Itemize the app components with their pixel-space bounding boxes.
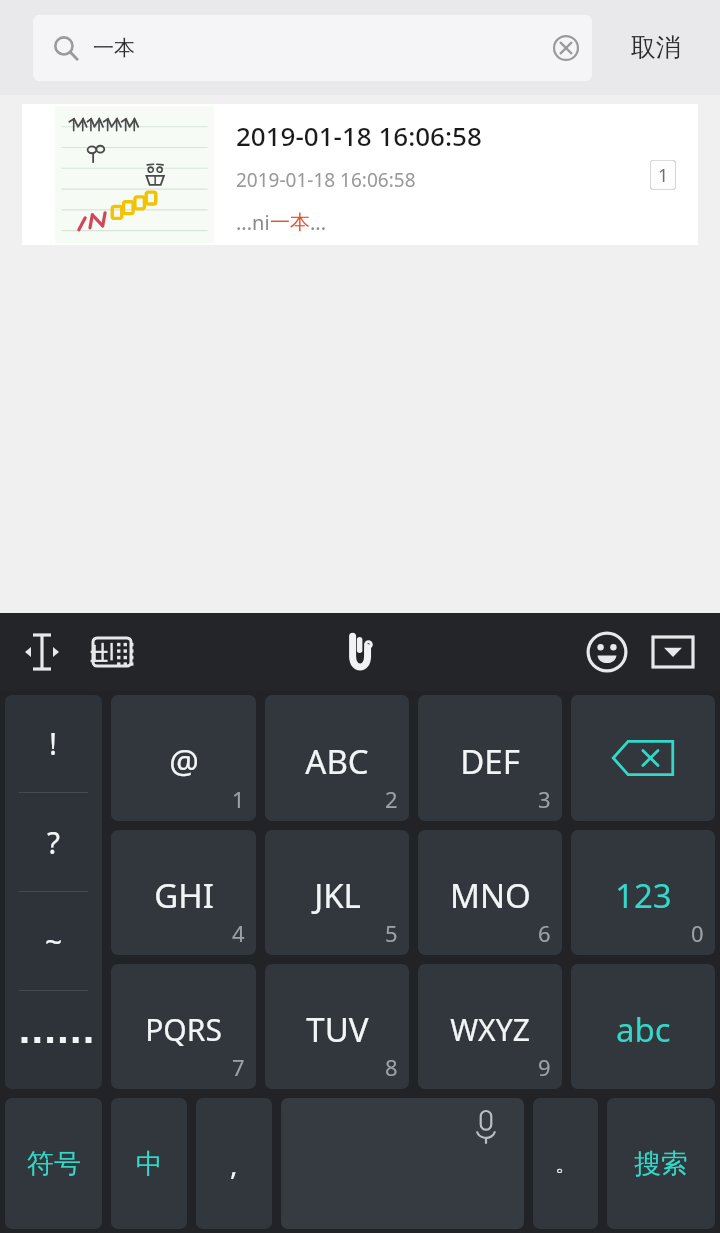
staticText: GHI — [154, 873, 214, 918]
staticText: 2019-01-18 16:06:58 — [236, 167, 416, 193]
button[interactable]: 中 — [111, 1098, 187, 1229]
staticText: @ — [169, 739, 199, 784]
staticText: 5 — [385, 918, 398, 948]
staticText: ... — [310, 209, 327, 236]
staticText: 1 — [658, 163, 669, 188]
button[interactable]: Punctuation — [5, 695, 102, 1089]
button[interactable]: @ — [111, 695, 256, 821]
staticText: 2 — [385, 784, 398, 814]
button[interactable]: 123 — [571, 830, 715, 955]
staticText: ABC — [305, 739, 369, 784]
staticText: 一本 — [270, 210, 310, 235]
staticText: ? — [47, 822, 61, 863]
button[interactable]: WXYZ — [418, 964, 562, 1089]
staticText: 中 — [136, 1147, 163, 1181]
staticText: ! — [49, 723, 58, 764]
staticText: abc — [616, 1007, 671, 1052]
button[interactable]: 一本 — [33, 15, 592, 81]
staticText: 符号 — [27, 1147, 81, 1181]
button[interactable]: TUV — [265, 964, 409, 1089]
staticText: 4 — [232, 918, 245, 948]
button[interactable]: 搜索 — [607, 1098, 715, 1229]
button[interactable]: Backspace — [571, 695, 715, 821]
staticText: PQRS — [145, 1009, 222, 1050]
button[interactable]: 取消 — [592, 0, 720, 95]
button[interactable]: 。 — [533, 1098, 598, 1229]
staticText: 一本 — [93, 35, 135, 61]
button[interactable]: PQRS — [111, 964, 256, 1089]
staticText: 7 — [232, 1052, 245, 1082]
button[interactable]: GHI — [111, 830, 256, 955]
staticText: 0 — [691, 918, 704, 948]
staticText: MNO — [450, 873, 531, 918]
button[interactable]: Hide keyboard — [640, 619, 706, 685]
staticText: 1 — [232, 784, 245, 814]
staticText: 3 — [538, 784, 551, 814]
button[interactable]: Clear search — [544, 26, 588, 70]
button[interactable]: Emoji — [574, 619, 640, 685]
staticText: 搜索 — [634, 1147, 688, 1181]
staticText: 。 — [555, 1150, 577, 1178]
staticText: 123 — [615, 873, 672, 918]
staticText: 2019-01-18 16:06:58 — [236, 118, 482, 153]
button[interactable]: ABC — [265, 695, 409, 821]
button[interactable]: MNO — [418, 830, 562, 955]
staticText: WXYZ — [450, 1009, 530, 1050]
button[interactable]: DEF — [418, 695, 562, 821]
staticText: TUV — [306, 1007, 369, 1052]
button[interactable]: abc — [571, 964, 715, 1089]
button[interactable]: , — [196, 1098, 272, 1229]
button[interactable]: JKL — [265, 830, 409, 955]
staticText: JKL — [314, 873, 361, 918]
button[interactable]: 2019-01-18 16:06:58 — [22, 104, 698, 245]
button[interactable]: Handwriting — [324, 619, 390, 685]
button[interactable]: 符号 — [5, 1098, 102, 1229]
staticText: ...ni — [236, 209, 270, 236]
button[interactable]: Input method — [84, 624, 140, 680]
staticText: 取消 — [631, 32, 681, 63]
staticText: 8 — [385, 1052, 398, 1082]
staticText: DEF — [460, 739, 520, 784]
staticText: ~ — [45, 921, 63, 962]
button[interactable]: Cursor move — [14, 624, 70, 680]
staticText: , — [230, 1145, 238, 1183]
button[interactable]: Space — [281, 1098, 524, 1229]
staticText: 9 — [538, 1052, 551, 1082]
staticText: 6 — [538, 918, 551, 948]
